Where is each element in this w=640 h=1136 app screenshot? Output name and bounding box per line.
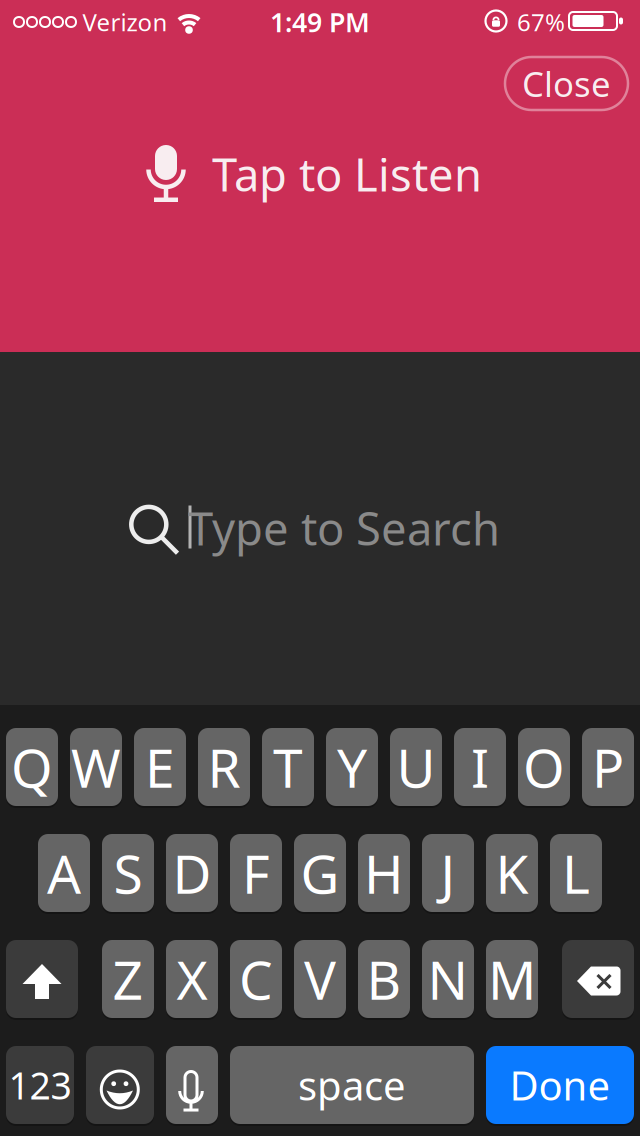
button[interactable]: Z xyxy=(102,940,154,1018)
staticText: Z xyxy=(112,944,143,1014)
button[interactable]: H xyxy=(358,834,410,912)
staticText: F xyxy=(242,838,270,908)
staticText: M xyxy=(488,944,536,1014)
button[interactable]: Done xyxy=(486,1046,634,1124)
staticText: B xyxy=(366,944,401,1014)
button[interactable]: W xyxy=(70,728,122,806)
button[interactable]: G xyxy=(294,834,346,912)
staticText: 123 xyxy=(8,1060,71,1110)
button[interactable]: S xyxy=(102,834,154,912)
button[interactable]: 123 xyxy=(6,1046,74,1124)
button[interactable]: Emoji xyxy=(86,1046,154,1124)
staticText: G xyxy=(300,838,339,908)
staticText: Type to Search xyxy=(188,498,500,558)
staticText: S xyxy=(113,838,142,908)
button[interactable]: space xyxy=(230,1046,474,1124)
staticText: L xyxy=(562,838,590,908)
button[interactable]: Q xyxy=(6,728,58,806)
button[interactable]: Dictate xyxy=(166,1046,218,1124)
button[interactable]: A xyxy=(38,834,90,912)
staticText: Q xyxy=(11,732,53,802)
staticText: X xyxy=(176,944,207,1014)
button[interactable]: Delete xyxy=(562,940,634,1018)
button[interactable]: V xyxy=(294,940,346,1018)
button[interactable]: L xyxy=(550,834,602,912)
button[interactable]: O xyxy=(518,728,570,806)
button[interactable]: M xyxy=(486,940,538,1018)
button[interactable]: Close xyxy=(505,57,628,110)
staticText: 67% xyxy=(517,6,565,38)
button[interactable]: N xyxy=(422,940,474,1018)
staticText: C xyxy=(239,944,273,1014)
button[interactable]: R xyxy=(198,728,250,806)
staticText: J xyxy=(440,838,455,908)
staticText: Verizon xyxy=(82,6,167,38)
staticText: I xyxy=(471,732,489,802)
staticText: U xyxy=(396,732,435,802)
staticText: Y xyxy=(337,732,367,802)
staticText: P xyxy=(592,732,624,802)
button[interactable]: D xyxy=(166,834,218,912)
staticText: K xyxy=(495,838,528,908)
button[interactable]: I xyxy=(454,728,506,806)
staticText: T xyxy=(273,732,303,802)
staticText: R xyxy=(207,732,240,802)
staticText: space xyxy=(298,1058,406,1111)
staticText: D xyxy=(172,838,211,908)
button[interactable]: K xyxy=(486,834,538,912)
staticText: V xyxy=(304,944,336,1014)
button[interactable]: F xyxy=(230,834,282,912)
button[interactable]: Type to Search xyxy=(120,494,500,560)
button[interactable]: J xyxy=(422,834,474,912)
button[interactable]: Tap to Listen xyxy=(136,130,496,220)
button[interactable]: T xyxy=(262,728,314,806)
staticText: W xyxy=(71,732,121,802)
button[interactable]: C xyxy=(230,940,282,1018)
button[interactable]: B xyxy=(358,940,410,1018)
button[interactable]: E xyxy=(134,728,186,806)
staticText: Tap to Listen xyxy=(212,144,482,204)
staticText: Done xyxy=(509,1058,610,1111)
staticText: H xyxy=(364,838,404,908)
button[interactable]: Shift xyxy=(6,940,78,1018)
staticText: E xyxy=(145,732,175,802)
button[interactable]: Y xyxy=(326,728,378,806)
staticText: 1:49 PM xyxy=(270,4,370,40)
staticText: N xyxy=(427,944,468,1014)
button[interactable]: U xyxy=(390,728,442,806)
staticText: Close xyxy=(522,60,611,106)
staticText: O xyxy=(523,732,565,802)
button[interactable]: P xyxy=(582,728,634,806)
staticText: A xyxy=(47,838,81,908)
button[interactable]: X xyxy=(166,940,218,1018)
